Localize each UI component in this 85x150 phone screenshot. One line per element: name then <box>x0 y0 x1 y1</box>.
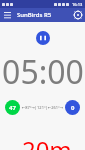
staticText: 16:13 <box>72 2 83 7</box>
staticText: ←87°→|121°|←261°→ <box>21 105 64 110</box>
button[interactable]: Settings <box>71 8 85 22</box>
button[interactable]: 47 <box>5 100 20 115</box>
staticText: 0 <box>71 104 75 112</box>
staticText: -20m <box>14 133 72 150</box>
staticText: SunBirds R5 <box>17 11 52 19</box>
staticText: 47 <box>9 104 16 112</box>
button[interactable]: Pause <box>36 31 50 45</box>
button[interactable]: Menu <box>0 8 14 22</box>
button[interactable]: 0 <box>65 100 80 115</box>
staticText: 05:00 <box>2 50 84 94</box>
